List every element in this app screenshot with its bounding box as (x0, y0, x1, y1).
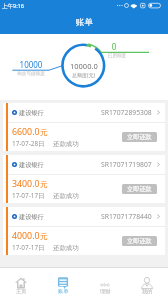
staticText: 账单 (76, 17, 93, 28)
staticText: SR17071719807 (101, 160, 152, 169)
staticText: 主页 (16, 288, 27, 295)
staticText: 0 (106, 41, 122, 52)
staticText: 我的 (142, 288, 153, 295)
staticText: 立即还款 (127, 237, 152, 245)
button[interactable]: 建设银行 (3, 103, 165, 151)
staticText: 10000.0 (70, 61, 98, 71)
staticText: SR17071778440 (101, 212, 152, 221)
staticText: 17-07-17日 (12, 243, 45, 252)
staticText: 已用额度 (105, 53, 129, 59)
staticText: 还款成功 (53, 244, 79, 252)
staticText: 上午9:16 (2, 2, 24, 10)
staticText: 理财 (100, 288, 111, 295)
button[interactable]: 建设银行 (3, 155, 165, 203)
other: Status icons (116, 1, 163, 10)
staticText: 剩余可借额度 (13, 71, 49, 77)
staticText: 3400.0 (12, 178, 40, 190)
staticText: 17-07-28日 (12, 139, 45, 148)
button[interactable]: 主页 (0, 268, 42, 300)
staticText: SR17072895308 (101, 108, 152, 117)
staticText: 10000 (16, 59, 46, 70)
button[interactable]: 理财 (84, 268, 126, 300)
staticText: 元 (40, 232, 48, 242)
button[interactable]: 账单 (42, 268, 84, 300)
button[interactable]: 立即还款 (122, 236, 157, 246)
button[interactable]: 我的 (126, 268, 168, 300)
staticText: 总额度(元) (72, 72, 96, 79)
staticText: 17-07-17日 (12, 191, 45, 200)
staticText: 建设银行 (19, 109, 44, 117)
staticText: 6600.0 (12, 126, 40, 138)
staticText: 元 (40, 128, 48, 138)
staticText: 4000.0 (12, 230, 40, 242)
button[interactable]: 立即还款 (122, 132, 157, 142)
staticText: 立即还款 (127, 185, 152, 193)
button[interactable]: 建设银行 (3, 207, 165, 255)
staticText: 还款成功 (53, 140, 79, 148)
staticText: 元 (40, 180, 48, 190)
button[interactable]: 立即还款 (122, 184, 157, 194)
staticText: 建设银行 (19, 161, 44, 169)
staticText: 立即还款 (127, 133, 152, 141)
staticText: 账单 (58, 288, 69, 295)
staticText: 建设银行 (19, 213, 44, 221)
staticText: 还款成功 (53, 192, 79, 200)
